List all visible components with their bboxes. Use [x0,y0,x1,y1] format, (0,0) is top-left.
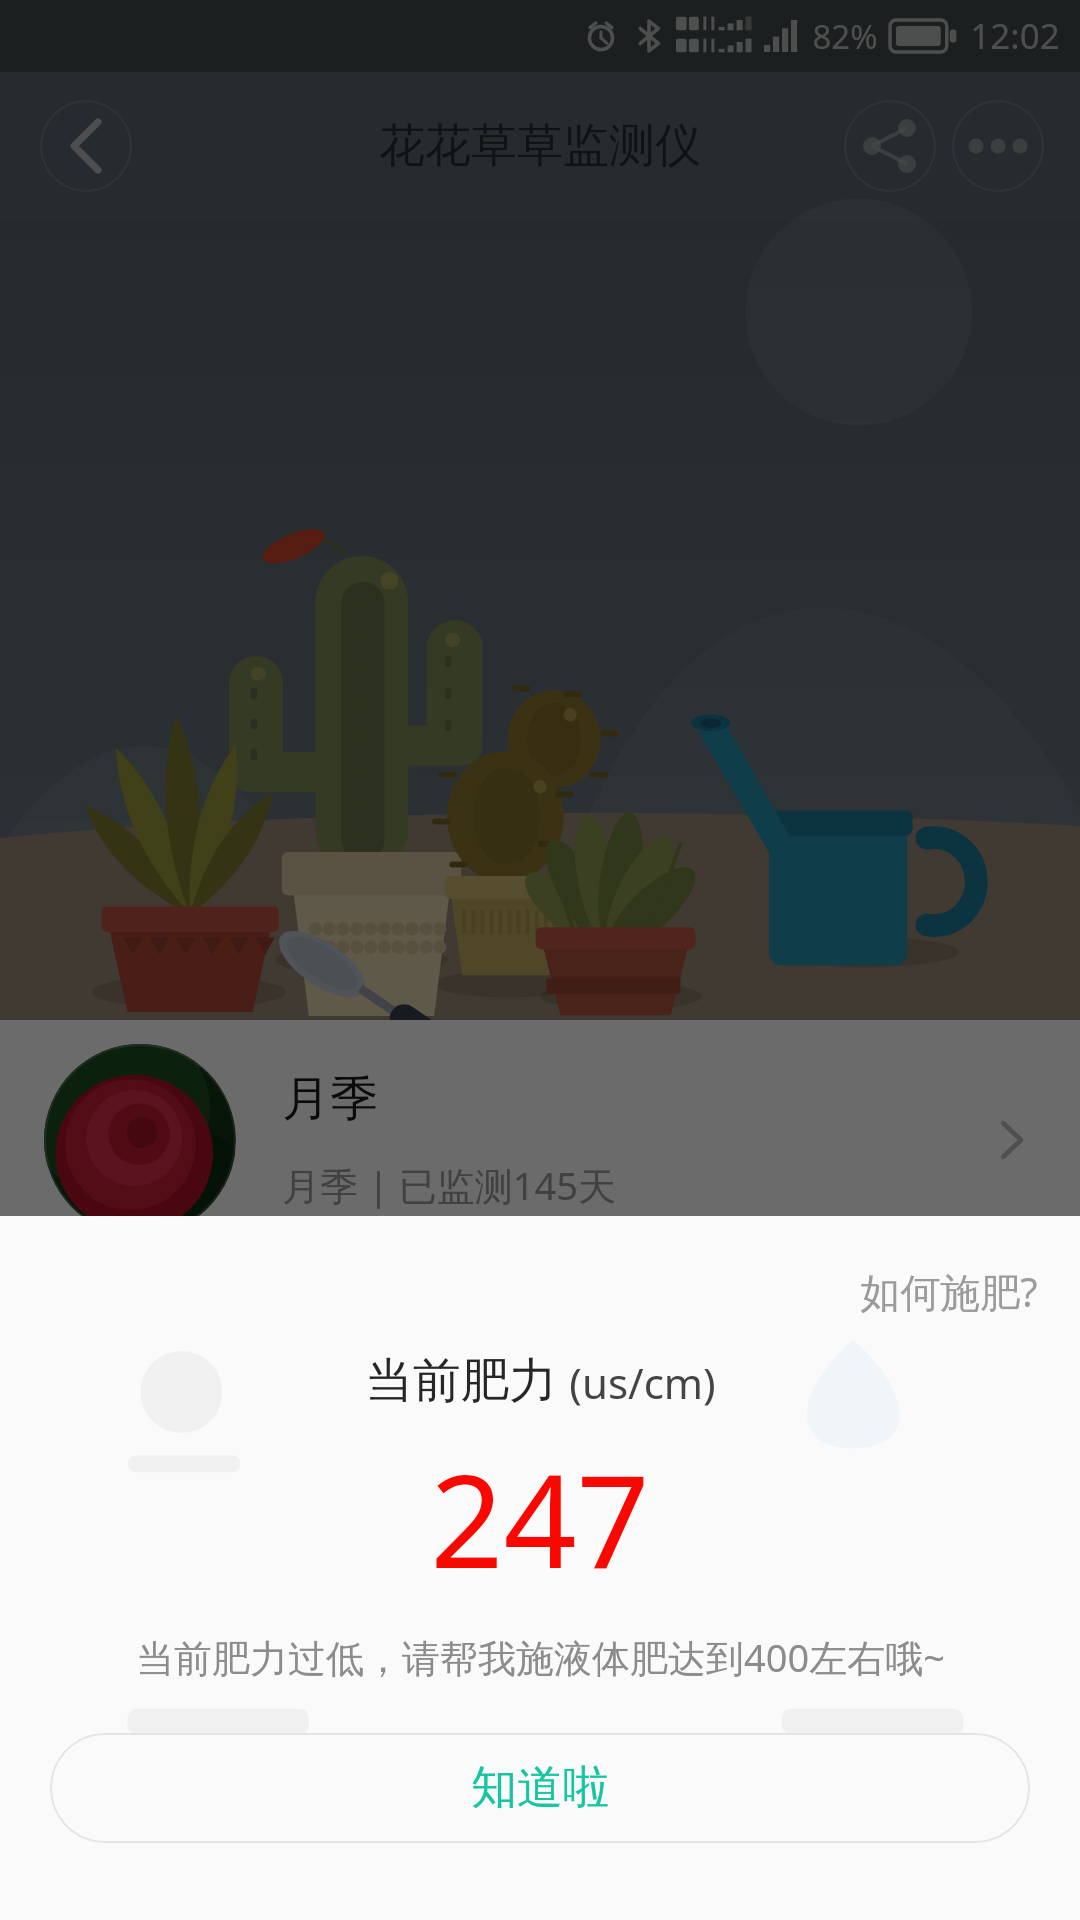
staticText: 月季 [282,1069,378,1129]
staticText: 12:02 [970,12,1060,60]
staticText: 82% [812,14,878,59]
staticText: 月季 | 已监测145天 [282,1159,616,1211]
other: Open details [988,1116,1036,1164]
button[interactable]: 知道啦 [50,1733,1030,1843]
button[interactable]: Back [40,100,132,192]
staticText: 如何施肥? [860,1264,1038,1319]
button[interactable]: 如何施肥? [852,1256,1046,1327]
staticText: 当前肥力过低，请帮我施液体肥达到400左右哦~ [136,1631,945,1683]
button[interactable]: 月季 [0,1020,1080,1260]
staticText: 花花草草监测仪 [379,117,701,175]
staticText: 知道啦 [471,1759,609,1817]
button[interactable]: Share [844,100,936,192]
staticText: 247 [430,1431,650,1605]
staticText: 当前肥力 [365,1351,557,1411]
staticText: (us/cm) [569,1354,716,1411]
button[interactable]: More options [952,100,1044,192]
